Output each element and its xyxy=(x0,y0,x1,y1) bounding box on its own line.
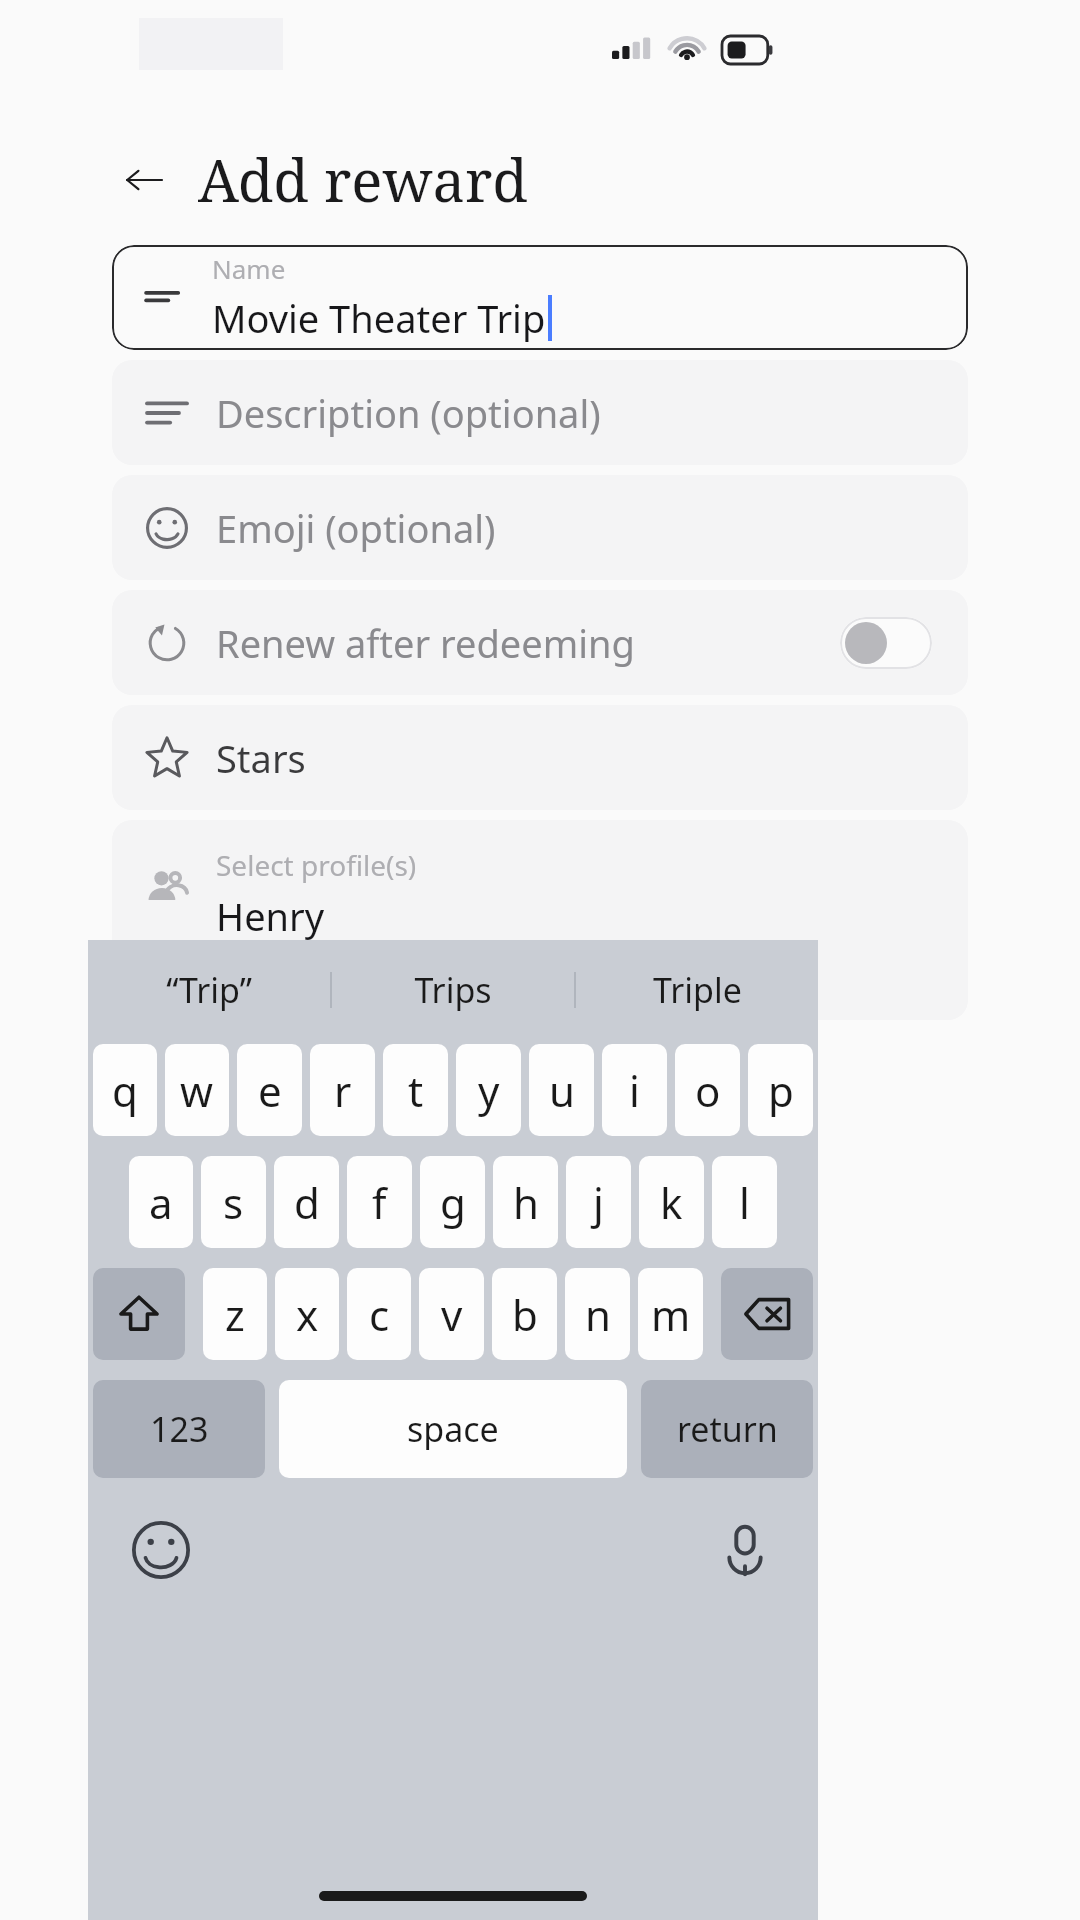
staticText: k xyxy=(660,1174,683,1231)
button[interactable]: return xyxy=(641,1380,813,1478)
button[interactable]: w xyxy=(165,1044,229,1136)
button[interactable]: Emoji (optional) xyxy=(112,475,968,580)
staticText: Description (optional) xyxy=(216,387,601,439)
button[interactable]: “Trip” xyxy=(88,954,330,1026)
staticText: 123 xyxy=(150,1406,209,1452)
staticText: space xyxy=(407,1406,499,1452)
staticText: Triple xyxy=(653,967,742,1013)
staticText: w xyxy=(180,1062,214,1119)
staticText: Add reward xyxy=(198,140,528,219)
staticText: s xyxy=(223,1174,244,1231)
button[interactable]: Emoji keyboard xyxy=(122,1511,200,1589)
staticText: Emoji (optional) xyxy=(216,502,496,554)
button[interactable]: l xyxy=(712,1156,777,1248)
button[interactable]: x xyxy=(275,1268,339,1360)
staticText: Select profile(s) xyxy=(216,846,417,884)
button[interactable]: n xyxy=(565,1268,630,1360)
button[interactable]: z xyxy=(203,1268,267,1360)
button[interactable]: y xyxy=(456,1044,521,1136)
staticText: h xyxy=(513,1174,539,1231)
staticText: n xyxy=(585,1286,611,1343)
button[interactable]: e xyxy=(237,1044,302,1136)
staticText: e xyxy=(258,1062,282,1119)
staticText: v xyxy=(441,1286,463,1343)
button[interactable]: i xyxy=(602,1044,667,1136)
staticText: “Trip” xyxy=(166,967,252,1013)
button[interactable]: o xyxy=(675,1044,740,1136)
button[interactable]: Name xyxy=(112,245,968,350)
staticText: Movie Theater Trip xyxy=(212,292,546,344)
button[interactable]: h xyxy=(493,1156,558,1248)
button[interactable]: f xyxy=(347,1156,412,1248)
staticText: c xyxy=(369,1286,390,1343)
staticText: return xyxy=(677,1406,778,1452)
staticText: Trips xyxy=(414,967,492,1013)
button[interactable]: k xyxy=(639,1156,704,1248)
staticText: i xyxy=(629,1062,640,1119)
staticText: x xyxy=(296,1286,319,1343)
staticText: f xyxy=(372,1174,387,1231)
button[interactable]: Shift xyxy=(93,1268,185,1360)
button[interactable]: Select profile(s) xyxy=(112,820,968,1020)
button[interactable]: space xyxy=(279,1380,627,1478)
staticText: r xyxy=(334,1062,352,1119)
button[interactable]: g xyxy=(420,1156,485,1248)
staticText: z xyxy=(225,1286,245,1343)
button[interactable]: Description (optional) xyxy=(112,360,968,465)
button[interactable]: c xyxy=(347,1268,411,1360)
button[interactable]: u xyxy=(529,1044,594,1136)
button[interactable]: Back xyxy=(112,148,176,212)
button[interactable]: Renew after redeeming xyxy=(112,590,968,695)
staticText: u xyxy=(549,1062,575,1119)
button[interactable]: 123 xyxy=(93,1380,265,1478)
staticText: j xyxy=(593,1174,604,1231)
button[interactable]: Dictation xyxy=(706,1511,784,1589)
staticText: p xyxy=(768,1062,794,1119)
button[interactable]: s xyxy=(201,1156,266,1248)
staticText: Stars xyxy=(216,732,306,784)
staticText: m xyxy=(651,1286,691,1343)
staticText: y xyxy=(478,1062,500,1119)
button[interactable]: Trips xyxy=(332,954,574,1026)
staticText: o xyxy=(695,1062,721,1119)
button[interactable]: q xyxy=(93,1044,157,1136)
staticText: a xyxy=(149,1174,173,1231)
button[interactable]: t xyxy=(383,1044,448,1136)
staticText: l xyxy=(739,1174,750,1231)
staticText: t xyxy=(408,1062,424,1119)
button[interactable]: b xyxy=(492,1268,557,1360)
staticText: Name xyxy=(212,251,286,286)
button[interactable]: p xyxy=(748,1044,813,1136)
button[interactable]: Triple xyxy=(576,954,818,1026)
staticText: g xyxy=(440,1174,466,1231)
button[interactable]: d xyxy=(274,1156,339,1248)
button[interactable]: v xyxy=(419,1268,484,1360)
staticText: Renew after redeeming xyxy=(216,617,635,669)
button[interactable]: Backspace xyxy=(721,1268,813,1360)
button[interactable]: a xyxy=(129,1156,193,1248)
button[interactable]: r xyxy=(310,1044,375,1136)
button[interactable]: Renew after redeeming toggle xyxy=(840,617,932,669)
staticText: d xyxy=(294,1174,320,1231)
staticText: b xyxy=(512,1286,538,1343)
staticText: q xyxy=(112,1062,138,1119)
button[interactable]: m xyxy=(638,1268,703,1360)
button[interactable]: Stars xyxy=(112,705,968,810)
button[interactable]: j xyxy=(566,1156,631,1248)
staticText: Henry xyxy=(216,890,325,942)
